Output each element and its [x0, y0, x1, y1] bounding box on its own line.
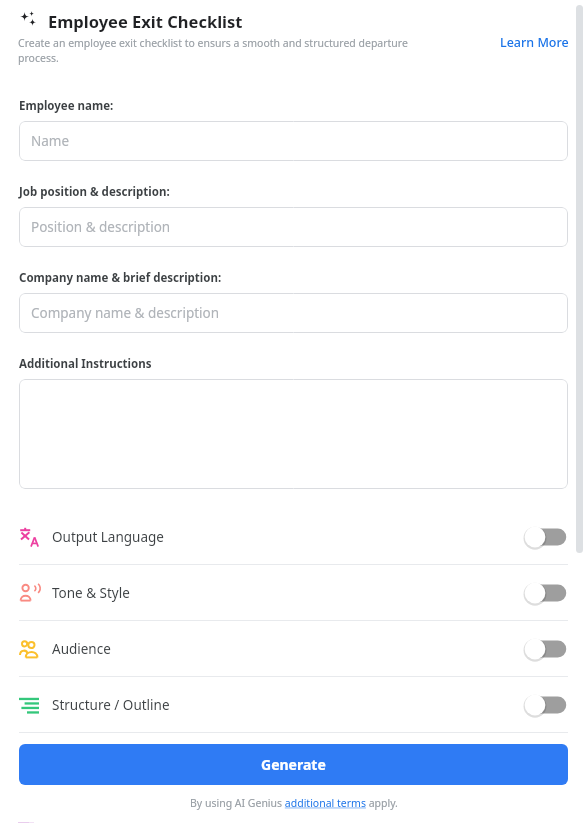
staticText: Employee Exit Checklist: [48, 10, 243, 32]
staticText: Additional Instructions: [19, 356, 152, 372]
staticText: Learn More: [500, 34, 569, 51]
button[interactable]: Structure / Outline toggle: [524, 692, 568, 718]
button[interactable]: Examples: [0, 822, 587, 823]
staticText: By using AI Genius additional terms appl…: [190, 796, 398, 810]
staticText: Tone & Style: [52, 584, 130, 602]
button[interactable]: [19, 379, 568, 489]
button[interactable]: Output Language toggle: [524, 524, 568, 550]
button[interactable]: Generate: [19, 744, 568, 785]
button[interactable]: Output Language: [0, 509, 587, 564]
staticText: Company name & brief description:: [19, 270, 222, 286]
button[interactable]: Learn More: [500, 34, 569, 51]
staticText: Position & description: [31, 218, 171, 236]
staticText: Audience: [52, 640, 111, 658]
staticText: Company name & description: [31, 304, 220, 322]
staticText: Output Language: [52, 528, 164, 546]
staticText: Name: [31, 132, 70, 150]
staticText: Employee name:: [19, 98, 114, 114]
button[interactable]: Tone & Style toggle: [524, 580, 568, 606]
staticText: Generate: [261, 755, 326, 774]
button[interactable]: Position & description: [19, 207, 568, 247]
staticText: Job position & description:: [19, 184, 170, 200]
button[interactable]: Audience: [0, 621, 587, 676]
button[interactable]: Structure / Outline: [0, 677, 587, 732]
button[interactable]: Company name & description: [19, 293, 568, 333]
button[interactable]: Audience toggle: [524, 636, 568, 662]
staticText: Create an employee exit checklist to ens…: [18, 36, 439, 65]
button[interactable]: Tone & Style: [0, 565, 587, 620]
button[interactable]: Name: [19, 121, 568, 161]
staticText: Structure / Outline: [52, 696, 170, 714]
